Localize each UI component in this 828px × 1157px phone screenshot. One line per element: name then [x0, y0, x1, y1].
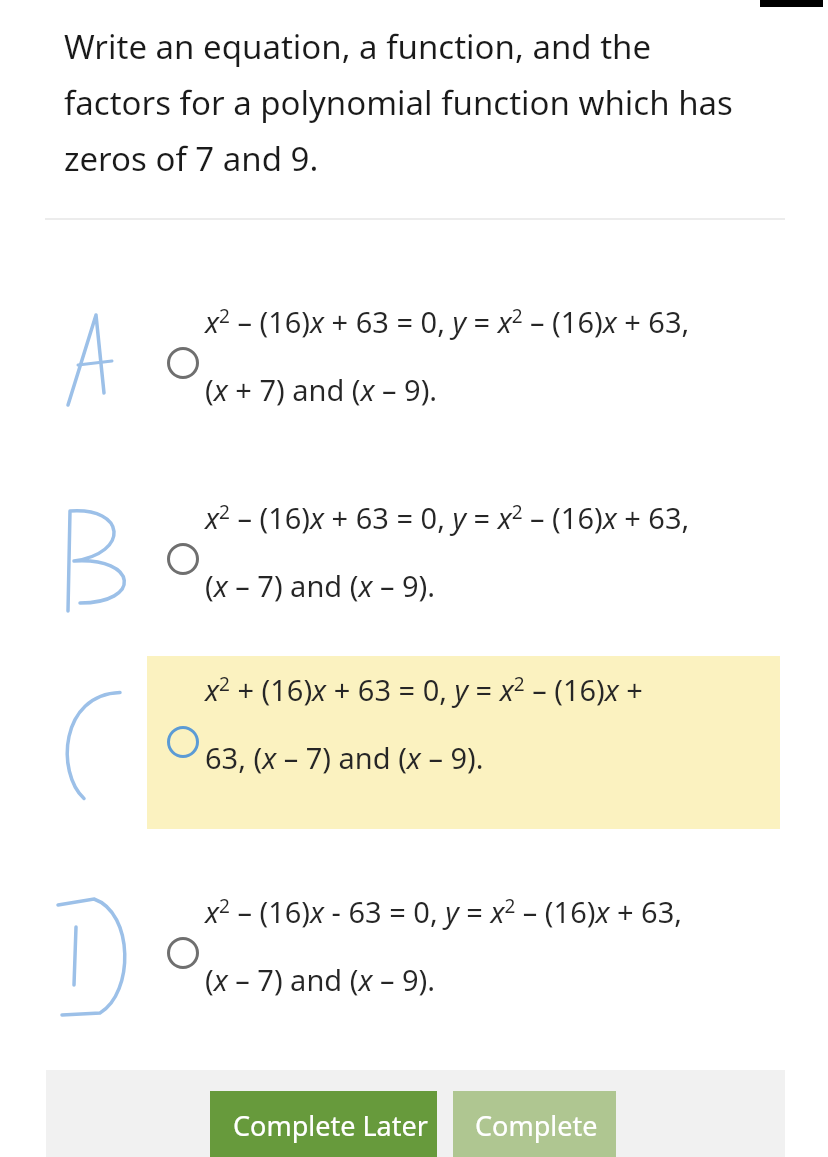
button[interactable]: Complete Later [210, 1091, 437, 1157]
button[interactable]: Complete [453, 1091, 616, 1157]
staticText: (x – 7) and (x – 9). [205, 960, 436, 999]
staticText: Write an equation, a function, and the f… [64, 24, 762, 181]
staticText: x2 – (16)x + 63 = 0, y = x2 – (16)x + 63… [205, 498, 690, 537]
staticText: 63, (x – 7) and (x – 9). [205, 738, 484, 777]
staticText: Complete [475, 1107, 598, 1144]
staticText: x2 + (16)x + 63 = 0, y = x2 – (16)x + [205, 670, 643, 709]
button[interactable]: x2 – (16)x - 63 = 0, y = x2 – (16)x + 63… [147, 878, 780, 1028]
button[interactable]: x2 + (16)x + 63 = 0, y = x2 – (16)x + [147, 656, 780, 829]
staticText: x2 – (16)x + 63 = 0, y = x2 – (16)x + 63… [205, 302, 690, 341]
button[interactable]: x2 – (16)x + 63 = 0, y = x2 – (16)x + 63… [147, 484, 780, 634]
staticText: (x – 7) and (x – 9). [205, 566, 436, 605]
staticText: x2 – (16)x - 63 = 0, y = x2 – (16)x + 63… [205, 892, 683, 931]
staticText: (x + 7) and (x – 9). [205, 370, 438, 409]
staticText: Complete Later [233, 1107, 428, 1144]
button[interactable]: x2 – (16)x + 63 = 0, y = x2 – (16)x + 63… [147, 288, 780, 438]
